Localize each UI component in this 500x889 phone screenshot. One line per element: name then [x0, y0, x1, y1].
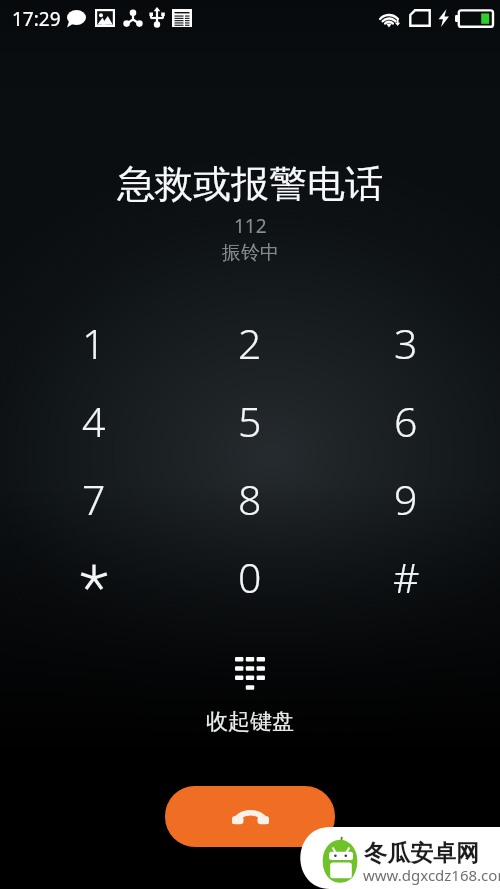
button[interactable]: 0: [172, 538, 328, 616]
staticText: 5: [238, 393, 262, 449]
staticText: 1: [82, 315, 106, 371]
staticText: 17:29: [12, 6, 61, 32]
staticText: 0: [238, 549, 262, 605]
staticText: 急救或报警电话: [117, 160, 383, 208]
button[interactable]: 4: [16, 382, 172, 460]
staticText: 冬瓜安卓网: [364, 839, 479, 868]
staticText: 3: [394, 315, 418, 371]
staticText: www.dgxcdz168.com: [363, 865, 500, 885]
staticText: 2: [238, 315, 262, 371]
button[interactable]: 6: [328, 382, 484, 460]
staticText: 8: [238, 471, 262, 527]
staticText: #: [393, 549, 420, 605]
button[interactable]: 7: [16, 460, 172, 538]
staticText: 4: [82, 393, 106, 449]
button[interactable]: End call: [165, 786, 335, 847]
button[interactable]: 2: [172, 304, 328, 382]
button[interactable]: 5: [172, 382, 328, 460]
staticText: 振铃中: [222, 241, 279, 265]
button[interactable]: 3: [328, 304, 484, 382]
button[interactable]: [16, 538, 172, 616]
button[interactable]: #: [328, 538, 484, 616]
staticText: 112: [234, 213, 267, 239]
staticText: 收起键盘: [206, 708, 294, 736]
staticText: 9: [394, 471, 418, 527]
button[interactable]: 8: [172, 460, 328, 538]
button[interactable]: 9: [328, 460, 484, 538]
staticText: 6: [394, 393, 418, 449]
staticText: 7: [82, 471, 106, 527]
button[interactable]: 1: [16, 304, 172, 382]
button[interactable]: 收起键盘: [0, 657, 500, 736]
